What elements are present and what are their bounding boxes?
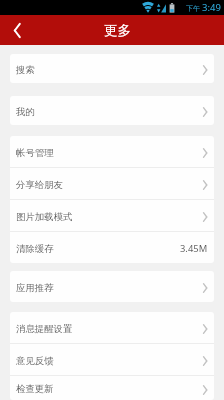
button[interactable]: 帐号管理 xyxy=(10,136,214,167)
staticText: 我的 xyxy=(16,106,35,118)
staticText: 消息提醒设置 xyxy=(16,323,73,335)
staticText: 更多 xyxy=(104,22,131,39)
staticText: 分享给朋友 xyxy=(16,179,63,191)
staticText: 意见反馈 xyxy=(16,355,54,367)
button[interactable]: 清除缓存 xyxy=(10,232,214,263)
staticText: 3.45M xyxy=(180,242,208,255)
button[interactable]: Back xyxy=(0,15,34,45)
staticText: 搜索 xyxy=(16,64,35,76)
staticText: 下午 xyxy=(186,4,200,13)
button[interactable]: 搜索 xyxy=(10,54,214,83)
button[interactable]: 意见反馈 xyxy=(10,344,214,375)
staticText: 清除缓存 xyxy=(16,243,54,255)
button[interactable]: 分享给朋友 xyxy=(10,168,214,199)
staticText: 帐号管理 xyxy=(16,147,54,159)
button[interactable]: 检查更新 xyxy=(10,376,214,400)
staticText: 应用推荐 xyxy=(16,282,54,294)
button[interactable]: 消息提醒设置 xyxy=(10,312,214,343)
staticText: 3:49 xyxy=(202,1,221,14)
staticText: 图片加载模式 xyxy=(16,211,73,223)
button[interactable]: 图片加载模式 xyxy=(10,200,214,231)
button[interactable]: 我的 xyxy=(10,96,214,125)
button[interactable]: 应用推荐 xyxy=(10,271,214,302)
staticText: 检查更新 xyxy=(16,383,54,395)
